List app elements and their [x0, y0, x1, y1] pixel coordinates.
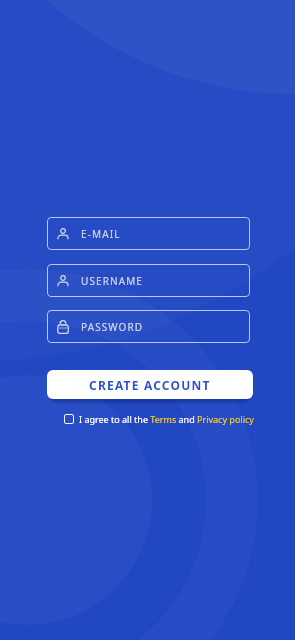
staticText: USERNAME	[81, 274, 143, 288]
staticText: I agree to all the Terms and Privacy pol…	[79, 413, 254, 425]
button[interactable]: E-MAIL	[47, 217, 250, 250]
button[interactable]: CREATE ACCOUNT	[47, 370, 253, 399]
staticText: E-MAIL	[81, 227, 121, 241]
staticText: PASSWORD	[81, 320, 144, 334]
button[interactable]: PASSWORD	[47, 310, 250, 343]
button[interactable]: USERNAME	[47, 264, 250, 297]
staticText: CREATE ACCOUNT	[89, 377, 211, 393]
button[interactable]: I agree to all the Terms and Privacy pol…	[64, 408, 254, 430]
